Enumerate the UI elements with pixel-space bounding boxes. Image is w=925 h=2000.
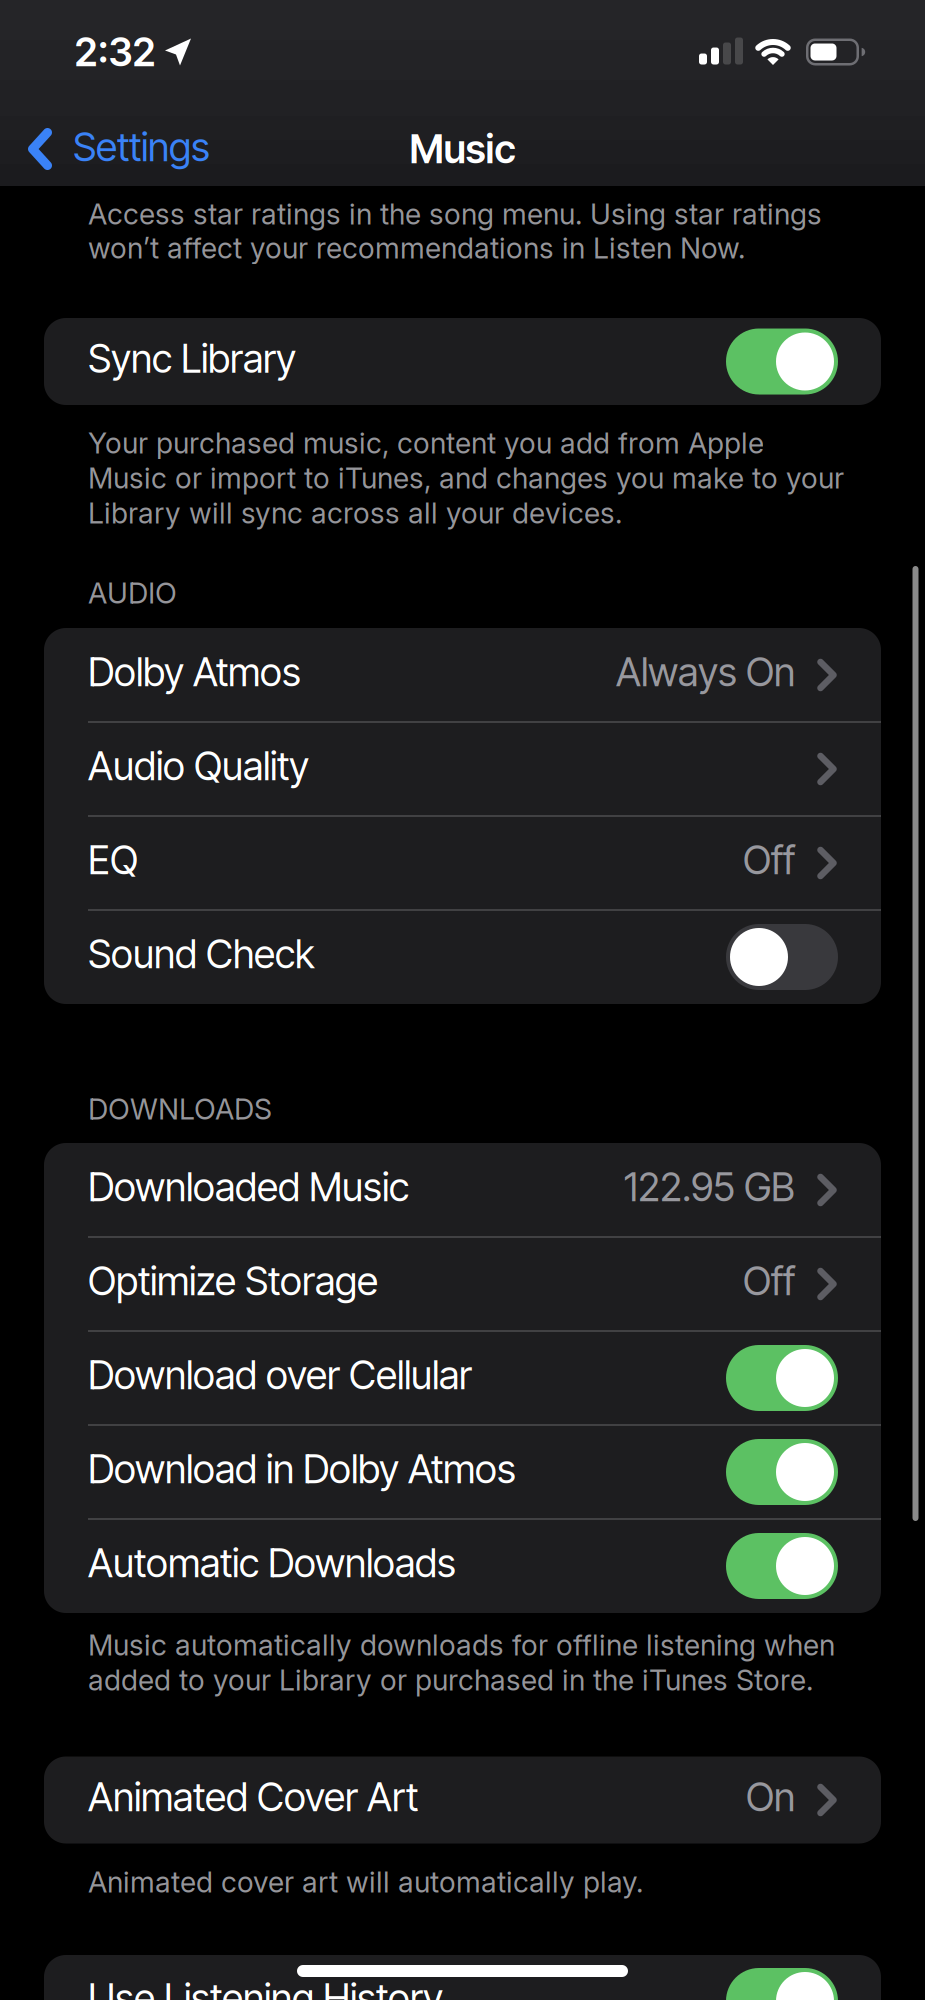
staticText: AUDIO [88,576,177,610]
staticText: added to your Library or purchased in th… [88,1663,813,1697]
staticText: Music automatically downloads for offlin… [88,1628,835,1662]
button[interactable]: Use Listening History [726,1968,838,2000]
button[interactable]: EQ [44,816,881,910]
staticText: DOWNLOADS [88,1092,272,1126]
staticText: Animated Cover Art [88,1773,418,1821]
staticText: Dolby Atmos [88,648,301,696]
button[interactable]: Sound Check [726,924,838,990]
staticText: EQ [88,836,138,884]
staticText: Off [743,836,795,884]
staticText: Animated cover art will automatically pl… [88,1865,643,1899]
staticText: Music or import to iTunes, and changes y… [88,461,844,495]
staticText: Downloaded Music [88,1163,409,1211]
staticText: Download in Dolby Atmos [88,1445,516,1493]
staticText: Sync Library [88,335,296,382]
staticText: Automatic Downloads [88,1539,456,1587]
staticText: On [746,1773,795,1821]
button[interactable]: Back to Settings [28,116,368,182]
button[interactable]: Download over Cellular [726,1345,838,1411]
staticText: Sound Check [88,930,315,978]
staticText: Library will sync across all your device… [88,496,622,530]
button[interactable]: Dolby Atmos [44,628,881,722]
staticText: won’t affect your recommendations in Lis… [88,231,745,265]
staticText: Music [409,125,515,173]
button[interactable]: Optimize Storage [44,1237,881,1331]
staticText: Access star ratings in the song menu. Us… [88,197,822,231]
staticText: Off [743,1257,795,1305]
staticText: Audio Quality [88,742,309,790]
button[interactable]: Audio Quality [44,722,881,816]
staticText: Always On [616,648,795,696]
staticText: Optimize Storage [88,1257,378,1305]
button[interactable]: Animated Cover Art [44,1753,881,1847]
button[interactable]: Downloaded Music [44,1143,881,1237]
button[interactable]: Sync Library [726,328,838,394]
staticText: Download over Cellular [88,1351,472,1399]
staticText: 122.95 GB [624,1163,795,1211]
button[interactable]: Download in Dolby Atmos [726,1439,838,1505]
button[interactable]: Automatic Downloads [726,1533,838,1599]
staticText: 2:32 [74,28,155,76]
staticText: Your purchased music, content you add fr… [88,426,764,460]
staticText: Use Listening History [88,1974,443,2000]
staticText: Settings [73,123,210,171]
